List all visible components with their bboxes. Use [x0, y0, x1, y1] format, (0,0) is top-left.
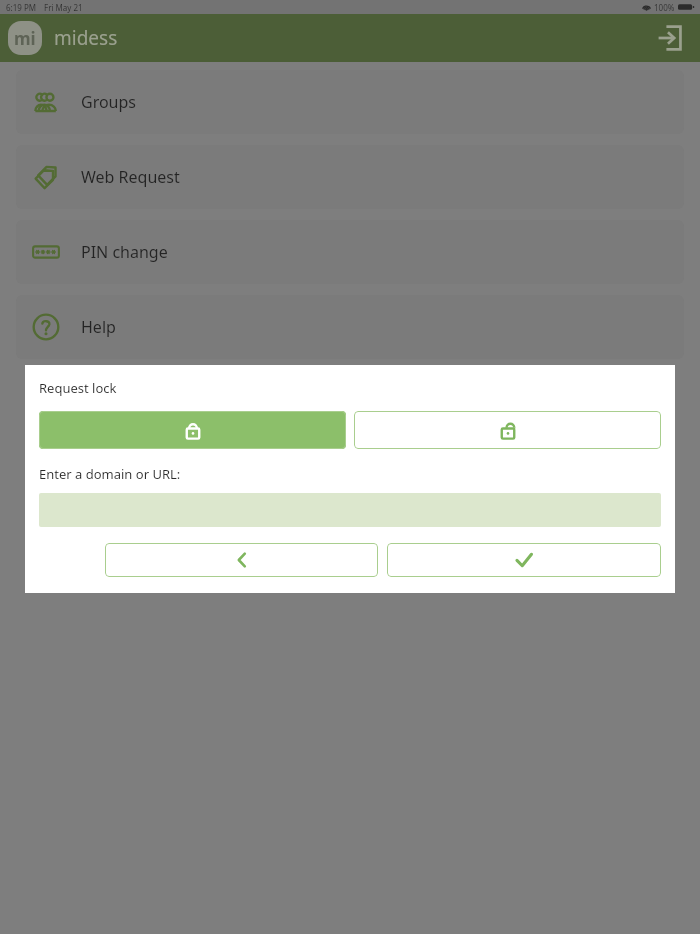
- staticText: PIN change: [81, 241, 168, 263]
- staticText: 6:19 PM: [6, 2, 37, 13]
- staticText: midess: [54, 25, 118, 51]
- staticText: mi: [14, 27, 36, 50]
- button[interactable]: Help: [16, 295, 684, 359]
- button[interactable]: Lock: [39, 411, 346, 449]
- staticText: Groups: [81, 91, 137, 113]
- staticText: Fri May 21: [44, 2, 83, 13]
- button[interactable]: Confirm: [387, 543, 661, 577]
- staticText: Request lock: [39, 379, 117, 397]
- button[interactable]: PIN change: [16, 220, 684, 284]
- button[interactable]: Groups: [16, 70, 684, 134]
- button[interactable]: Web Request: [16, 145, 684, 209]
- button[interactable]: Log out: [652, 21, 686, 55]
- staticText: Help: [81, 316, 116, 338]
- button[interactable]: Back: [105, 543, 378, 577]
- staticText: Web Request: [81, 166, 180, 188]
- staticText: 100%: [654, 2, 675, 13]
- button[interactable]: Unlock: [354, 411, 661, 449]
- staticText: Enter a domain or URL:: [39, 465, 181, 483]
